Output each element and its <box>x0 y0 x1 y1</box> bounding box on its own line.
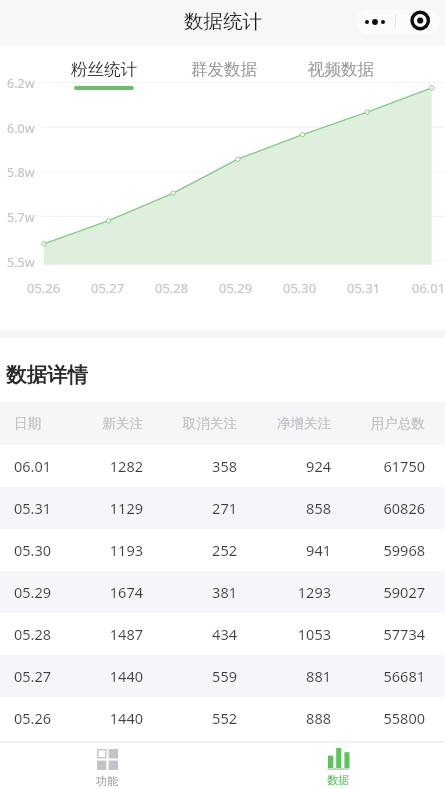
staticText: 858 <box>257 498 331 518</box>
staticText: 57734 <box>351 624 425 644</box>
staticText: 1282 <box>70 456 143 476</box>
staticText: 05.30 <box>14 540 70 560</box>
staticText: 5.7w <box>7 209 35 226</box>
staticText: 1674 <box>70 582 143 602</box>
staticText: 1293 <box>257 582 331 602</box>
staticText: 05.29 <box>14 582 70 602</box>
staticText: 05.31 <box>347 279 381 297</box>
staticText: 924 <box>257 456 331 476</box>
staticText: 1129 <box>70 498 143 518</box>
staticText: 1440 <box>70 666 143 686</box>
staticText: 05.29 <box>219 279 253 297</box>
staticText: 252 <box>163 540 237 560</box>
staticText: 05.30 <box>283 279 317 297</box>
button[interactable]: 05.31 <box>0 487 445 529</box>
staticText: 数据统计 <box>184 9 262 34</box>
staticText: 271 <box>163 498 237 518</box>
staticText: 视频数据 <box>308 59 374 80</box>
staticText: 群发数据 <box>191 59 257 80</box>
staticText: 59027 <box>351 582 425 602</box>
staticText: 6.2w <box>7 75 35 92</box>
staticText: 05.27 <box>14 666 70 686</box>
staticText: 941 <box>257 540 331 560</box>
staticText: 05.28 <box>155 279 189 297</box>
staticText: 粉丝统计 <box>71 59 137 80</box>
staticText: 5.5w <box>7 254 35 271</box>
staticText: 05.27 <box>91 279 125 297</box>
staticText: 数据详情 <box>6 362 88 388</box>
staticText: 1053 <box>257 624 331 644</box>
staticText: 381 <box>163 582 237 602</box>
staticText: 日期 <box>14 415 70 432</box>
staticText: 用户总数 <box>351 415 425 432</box>
staticText: 55800 <box>351 708 425 728</box>
staticText: 5.8w <box>7 164 35 181</box>
button[interactable]: 粉丝统计 <box>45 46 163 92</box>
staticText: 取消关注 <box>163 415 237 432</box>
button[interactable]: Close <box>395 9 440 34</box>
staticText: 888 <box>257 708 331 728</box>
staticText: 功能 <box>96 774 118 788</box>
staticText: 05.26 <box>27 279 61 297</box>
button[interactable]: 视频数据 <box>282 46 400 92</box>
staticText: 1440 <box>70 708 143 728</box>
button[interactable]: 05.27 <box>0 655 445 697</box>
staticText: 559 <box>163 666 237 686</box>
button[interactable]: 05.26 <box>0 697 445 739</box>
button[interactable]: 数据 <box>298 743 378 789</box>
staticText: 净增关注 <box>257 415 331 432</box>
button[interactable]: More options <box>356 9 394 34</box>
staticText: 05.26 <box>14 708 70 728</box>
staticText: 1193 <box>70 540 143 560</box>
staticText: 6.0w <box>7 120 35 137</box>
staticText: 1487 <box>70 624 143 644</box>
staticText: 881 <box>257 666 331 686</box>
staticText: 60826 <box>351 498 425 518</box>
staticText: 新关注 <box>70 415 143 432</box>
staticText: 06.01 <box>14 456 70 476</box>
staticText: 05.28 <box>14 624 70 644</box>
button[interactable]: 06.01 <box>0 445 445 487</box>
staticText: 61750 <box>351 456 425 476</box>
button[interactable]: 05.29 <box>0 571 445 613</box>
button[interactable]: 功能 <box>67 743 147 789</box>
staticText: 434 <box>163 624 237 644</box>
button[interactable]: 05.30 <box>0 529 445 571</box>
button[interactable]: 05.28 <box>0 613 445 655</box>
staticText: 358 <box>163 456 237 476</box>
staticText: 06.01 <box>412 279 445 297</box>
button[interactable]: 群发数据 <box>165 46 283 92</box>
staticText: 05.31 <box>14 498 70 518</box>
staticText: 552 <box>163 708 237 728</box>
staticText: 数据 <box>327 773 349 787</box>
staticText: 59968 <box>351 540 425 560</box>
staticText: 56681 <box>351 666 425 686</box>
